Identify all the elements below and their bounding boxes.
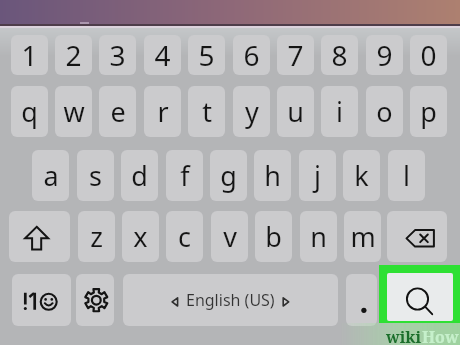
button[interactable]: e	[99, 86, 136, 137]
button[interactable]: f	[166, 150, 203, 201]
button[interactable]: h	[254, 150, 291, 201]
staticText: How	[422, 326, 459, 345]
staticText: x	[133, 218, 148, 255]
staticText: u	[287, 93, 304, 130]
button[interactable]: z	[78, 211, 115, 262]
staticText: z	[90, 218, 103, 255]
button[interactable]: 2	[55, 35, 92, 75]
button[interactable]: p	[410, 86, 447, 137]
staticText: i	[336, 93, 343, 130]
button[interactable]: 6	[233, 35, 270, 75]
staticText: p	[420, 93, 437, 130]
staticText: r	[157, 93, 169, 130]
button[interactable]: a	[32, 150, 69, 201]
staticText: h	[264, 157, 281, 194]
staticText: a	[43, 157, 59, 194]
button[interactable]: r	[144, 86, 181, 137]
button[interactable]: 9	[366, 35, 403, 75]
button[interactable]: 3	[99, 35, 136, 75]
button[interactable]: v	[211, 211, 248, 262]
button[interactable]: q	[11, 86, 48, 137]
button[interactable]: Shift	[9, 211, 70, 262]
staticText: 1	[21, 36, 38, 74]
staticText: f	[180, 157, 190, 194]
staticText: 0	[420, 36, 437, 74]
button[interactable]: b	[255, 211, 292, 262]
button[interactable]: Symbols and emoji	[12, 274, 71, 326]
staticText: s	[89, 157, 102, 194]
staticText: d	[131, 157, 148, 194]
button[interactable]: d	[121, 150, 158, 201]
button[interactable]: 1	[11, 35, 48, 75]
button[interactable]: Settings	[76, 274, 114, 326]
staticText: l	[403, 157, 410, 194]
button[interactable]: 7	[277, 35, 314, 75]
staticText: 4	[154, 36, 171, 74]
staticText: 3	[109, 36, 126, 74]
staticText: y	[245, 93, 259, 130]
button[interactable]: s	[77, 150, 114, 201]
staticText: w	[63, 93, 85, 130]
staticText: 7	[287, 36, 304, 74]
staticText: c	[178, 218, 191, 255]
button[interactable]: o	[366, 86, 403, 137]
button[interactable]: y	[233, 86, 270, 137]
button[interactable]: i	[321, 86, 358, 137]
button[interactable]: k	[343, 150, 380, 201]
staticText: 8	[331, 36, 348, 74]
staticText: English (US)	[186, 289, 275, 311]
staticText: b	[265, 218, 282, 255]
staticText: m	[350, 218, 376, 255]
staticText: n	[310, 218, 327, 255]
staticText: k	[354, 157, 369, 194]
button[interactable]: c	[166, 211, 203, 262]
button[interactable]: English (US)	[123, 274, 338, 326]
button[interactable]: n	[300, 211, 337, 262]
button[interactable]: u	[277, 86, 314, 137]
staticText: 5	[198, 36, 215, 74]
button[interactable]: 0	[410, 35, 447, 75]
staticText: 6	[243, 36, 260, 74]
button[interactable]: x	[122, 211, 159, 262]
button[interactable]: Backspace	[387, 211, 447, 262]
staticText: g	[220, 157, 237, 194]
button[interactable]: j	[299, 150, 336, 201]
staticText: e	[110, 93, 126, 130]
staticText: q	[21, 93, 38, 130]
staticText: 9	[376, 36, 393, 74]
staticText: 2	[65, 36, 82, 74]
button[interactable]: l	[388, 150, 425, 201]
staticText: v	[223, 218, 237, 255]
button[interactable]: Period	[346, 274, 377, 326]
button[interactable]: 8	[321, 35, 358, 75]
staticText: o	[376, 93, 393, 130]
button[interactable]: g	[210, 150, 247, 201]
staticText: wiki	[386, 326, 422, 345]
staticText: j	[314, 157, 321, 194]
button[interactable]: 4	[144, 35, 181, 75]
staticText: t	[202, 93, 212, 130]
button[interactable]: w	[55, 86, 92, 137]
button[interactable]: Search	[387, 273, 453, 321]
button[interactable]: t	[188, 86, 225, 137]
button[interactable]: m	[344, 211, 381, 262]
button[interactable]: 5	[188, 35, 225, 75]
